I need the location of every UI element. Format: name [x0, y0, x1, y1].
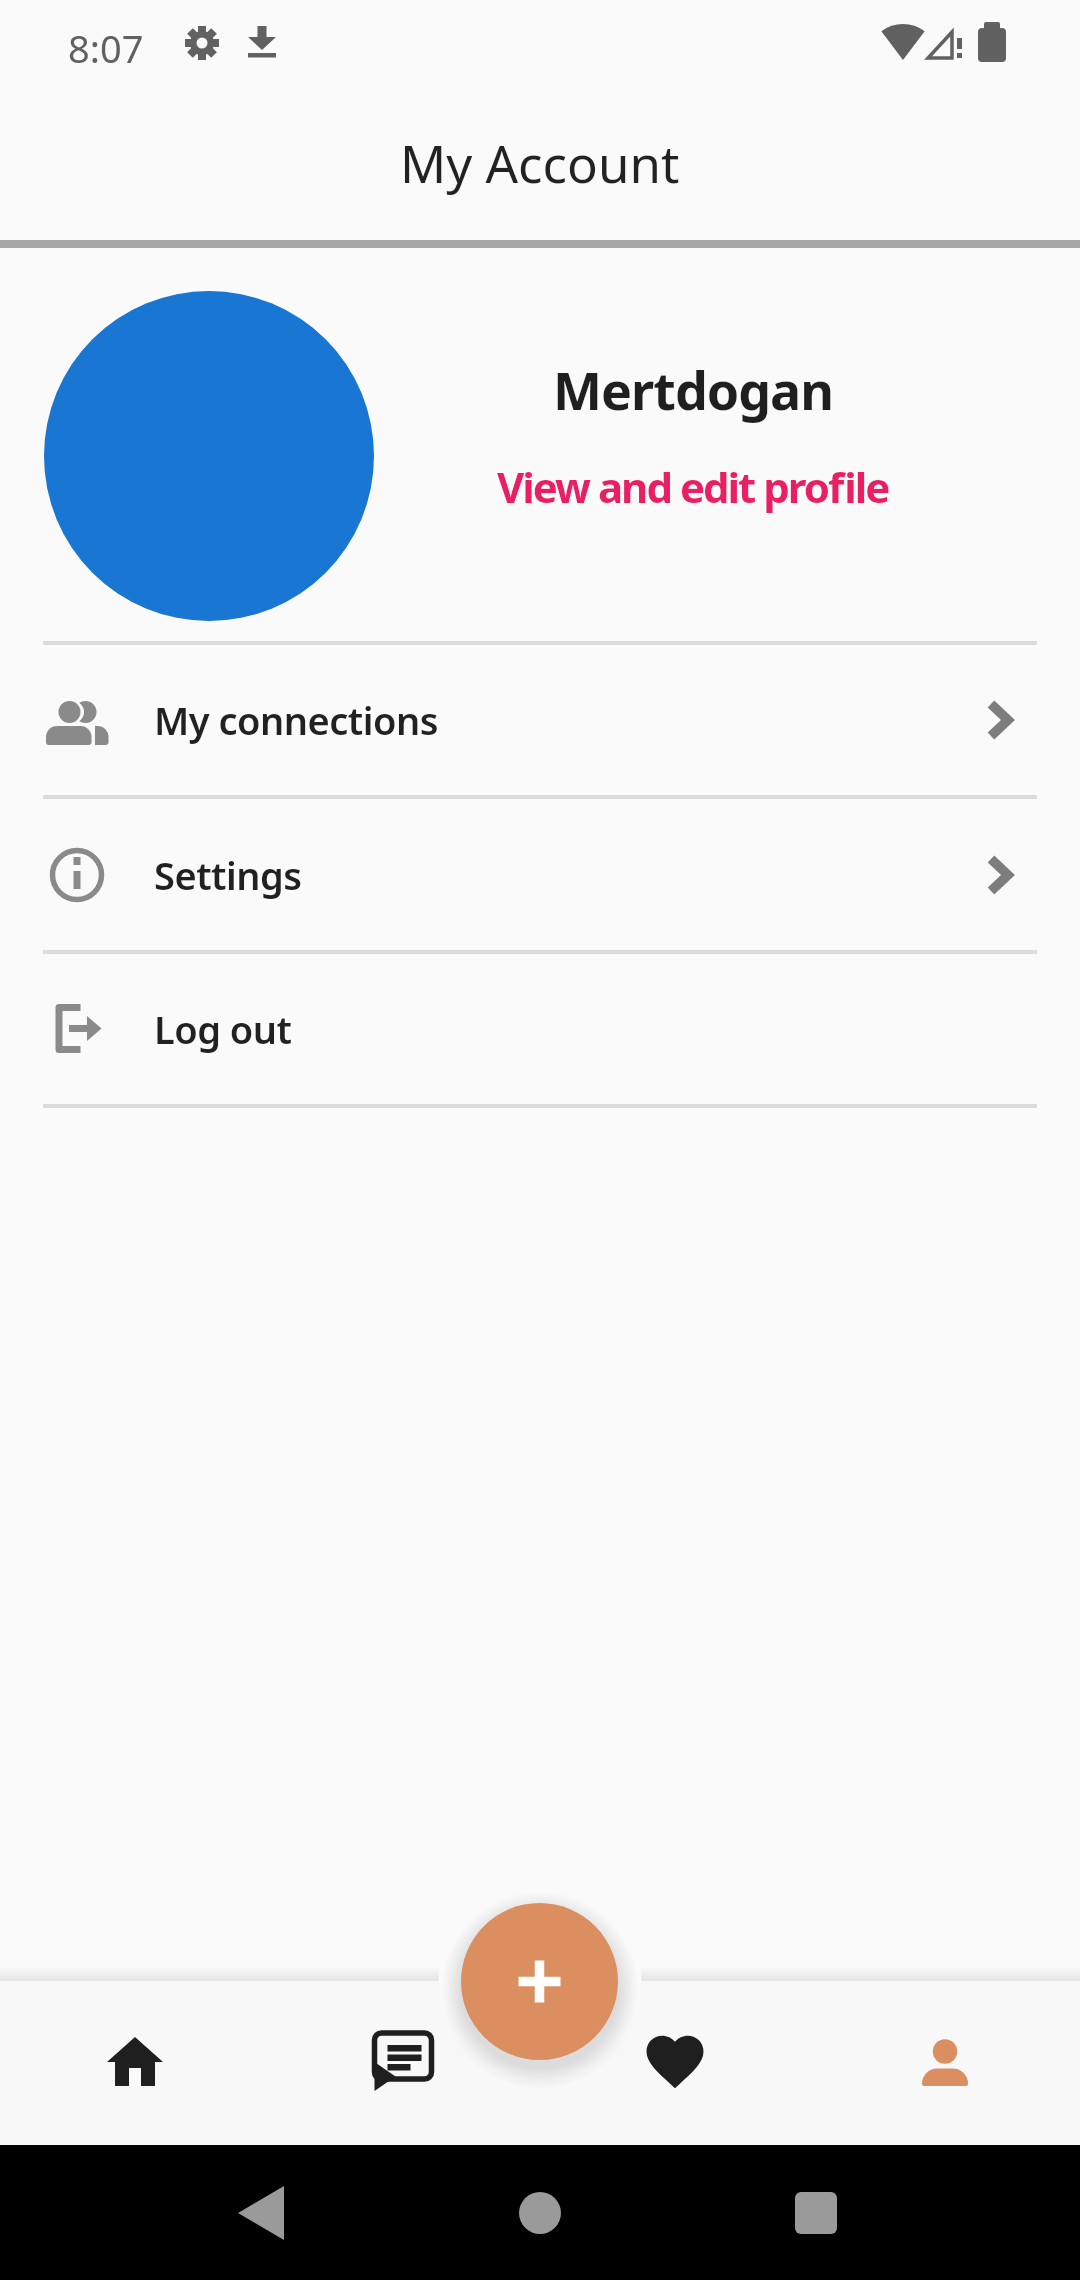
button[interactable]	[600, 1986, 750, 2136]
staticText: Settings	[154, 849, 302, 901]
button[interactable]	[44, 291, 374, 621]
button[interactable]	[328, 1986, 478, 2136]
button[interactable]: View and edit profile	[497, 458, 889, 515]
button[interactable]: Log out	[0, 954, 1080, 1104]
staticText: 8:07	[68, 22, 144, 74]
button[interactable]	[60, 1986, 210, 2136]
button[interactable]	[870, 1986, 1020, 2136]
staticText: Log out	[154, 1003, 292, 1055]
button[interactable]: My connections	[0, 645, 1080, 795]
staticText: Mertdogan	[553, 354, 834, 425]
staticText: My Account	[400, 128, 680, 197]
staticText: My connections	[154, 694, 438, 746]
button[interactable]: Settings	[0, 799, 1080, 950]
button[interactable]	[461, 1903, 618, 2060]
